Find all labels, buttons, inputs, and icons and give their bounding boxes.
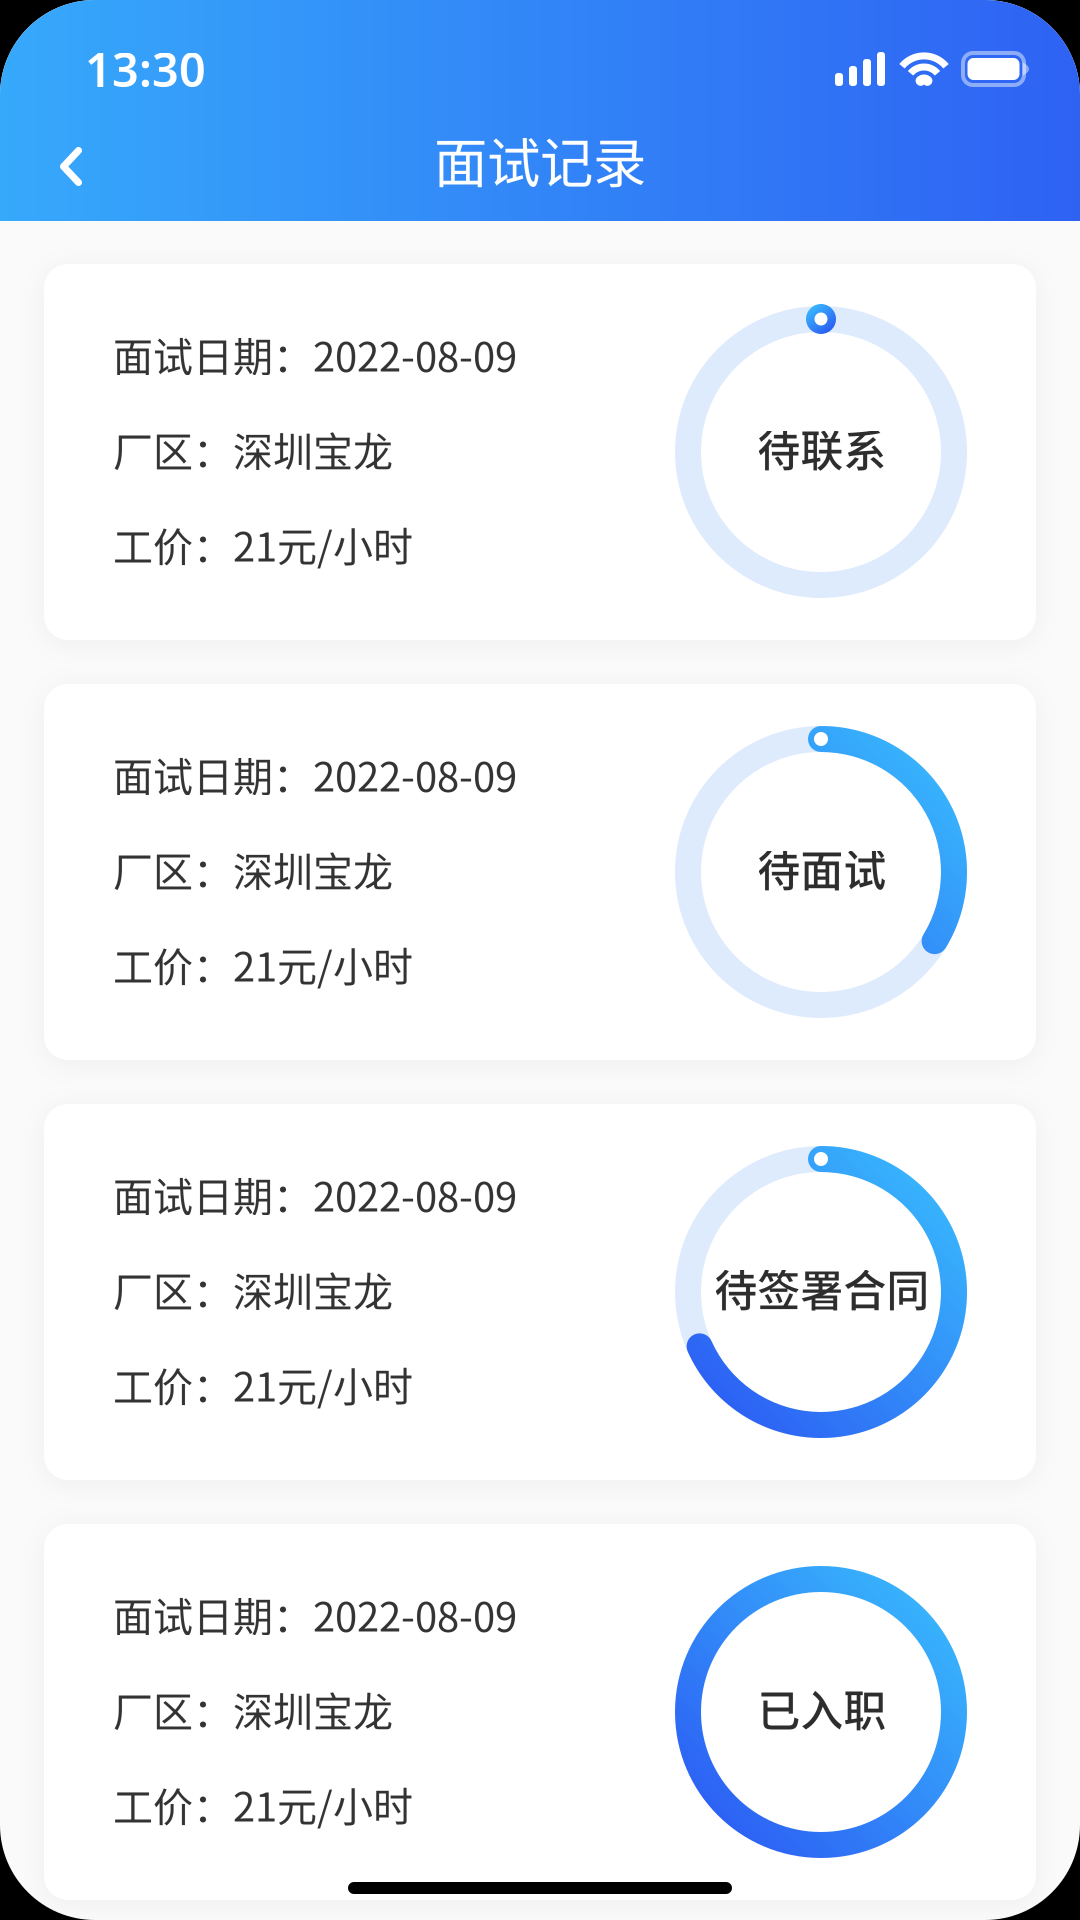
staticText: 待面试 — [757, 837, 886, 899]
button[interactable]: Back — [21, 109, 121, 209]
staticText: 厂区：深圳宝龙 — [113, 420, 393, 478]
staticText: 厂区：深圳宝龙 — [113, 1260, 393, 1318]
staticText: 厂区：深圳宝龙 — [113, 1680, 393, 1738]
staticText: 工价：21元/小时 — [113, 515, 413, 573]
staticText: 工价：21元/小时 — [113, 1775, 413, 1833]
staticText: 面试日期：2022-08-09 — [113, 325, 517, 383]
staticText: 面试记录 — [434, 121, 646, 198]
button[interactable]: 面试日期：2022-08-09 — [44, 1524, 1036, 1900]
staticText: 面试日期：2022-08-09 — [113, 745, 517, 803]
button[interactable]: 面试日期：2022-08-09 — [44, 264, 1036, 640]
staticText: 13:30 — [85, 38, 206, 100]
staticText: 工价：21元/小时 — [113, 1355, 413, 1413]
button[interactable]: 面试日期：2022-08-09 — [44, 1104, 1036, 1480]
staticText: 厂区：深圳宝龙 — [113, 840, 393, 898]
staticText: 工价：21元/小时 — [113, 935, 413, 993]
staticText: 已入职 — [757, 1677, 886, 1739]
button[interactable]: 面试日期：2022-08-09 — [44, 684, 1036, 1060]
staticText: 面试日期：2022-08-09 — [113, 1165, 517, 1223]
staticText: 面试日期：2022-08-09 — [113, 1585, 517, 1643]
staticText: 待联系 — [757, 417, 886, 479]
staticText: 待签署合同 — [714, 1257, 929, 1319]
